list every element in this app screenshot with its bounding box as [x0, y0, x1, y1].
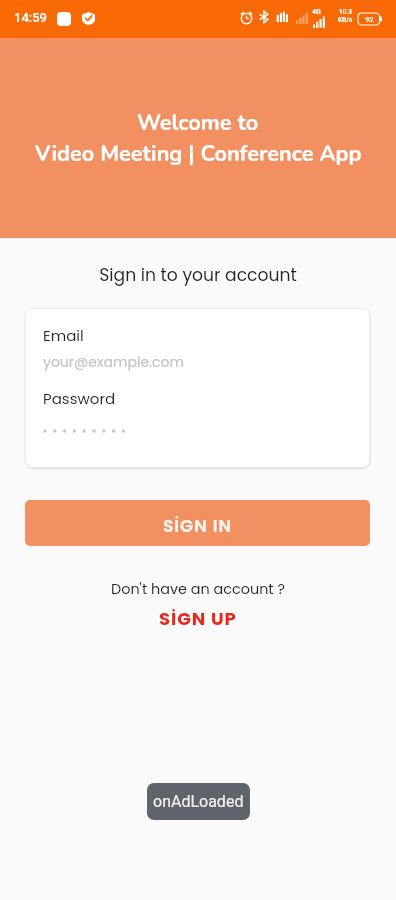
staticText: 4G [312, 8, 321, 16]
button[interactable]: SİGN UP [149, 604, 247, 633]
staticText: 14:59 [14, 10, 47, 25]
staticText: 92 [365, 15, 374, 24]
staticText: Password [43, 388, 116, 409]
staticText: Welcome to [137, 108, 259, 138]
button[interactable]: Email [25, 308, 370, 388]
button[interactable]: SİGN IN [25, 500, 370, 546]
staticText: Sign in to your account [0, 263, 396, 287]
staticText: KB/s [338, 16, 353, 24]
staticText: onAdLoaded [153, 792, 244, 811]
staticText: your@example.com [43, 352, 184, 372]
staticText: Video Meeting | Conference App [35, 139, 362, 169]
staticText: Don't have an account ? [0, 579, 396, 599]
staticText: 10.3 [339, 8, 352, 16]
staticText: Email [43, 325, 84, 346]
button[interactable]: Password [25, 388, 370, 468]
staticText: SİGN IN [163, 514, 232, 538]
